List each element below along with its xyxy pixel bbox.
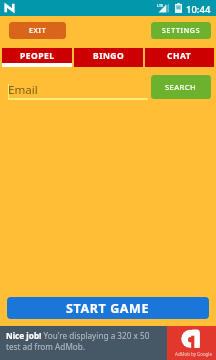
button[interactable]: CHAT — [145, 48, 214, 67]
staticText: Nice job! You're displaying a 320 x 50 t… — [6, 330, 161, 352]
button[interactable]: SEARCH — [151, 75, 211, 99]
staticText: SEARCH — [165, 82, 197, 92]
button[interactable]: BINGO — [74, 48, 143, 67]
staticText: 10:44 — [186, 3, 211, 16]
staticText: BINGO — [93, 50, 125, 62]
staticText: SETTINGS — [162, 26, 201, 36]
button[interactable]: PEOPEL — [2, 48, 72, 67]
button[interactable]: EXIT — [9, 22, 66, 39]
staticText: START GAME — [66, 300, 150, 317]
button[interactable]: Nice job! You're displaying a 320 x 50 t… — [0, 326, 216, 360]
staticText: PEOPEL — [20, 50, 55, 62]
staticText: Email — [8, 82, 38, 98]
staticText: LTE — [157, 3, 164, 8]
button[interactable]: START GAME — [7, 297, 209, 319]
button[interactable]: SETTINGS — [151, 22, 211, 39]
staticText: EXIT — [29, 26, 47, 36]
staticText: CHAT — [167, 50, 192, 62]
staticText: AdMob by Google — [175, 351, 212, 357]
